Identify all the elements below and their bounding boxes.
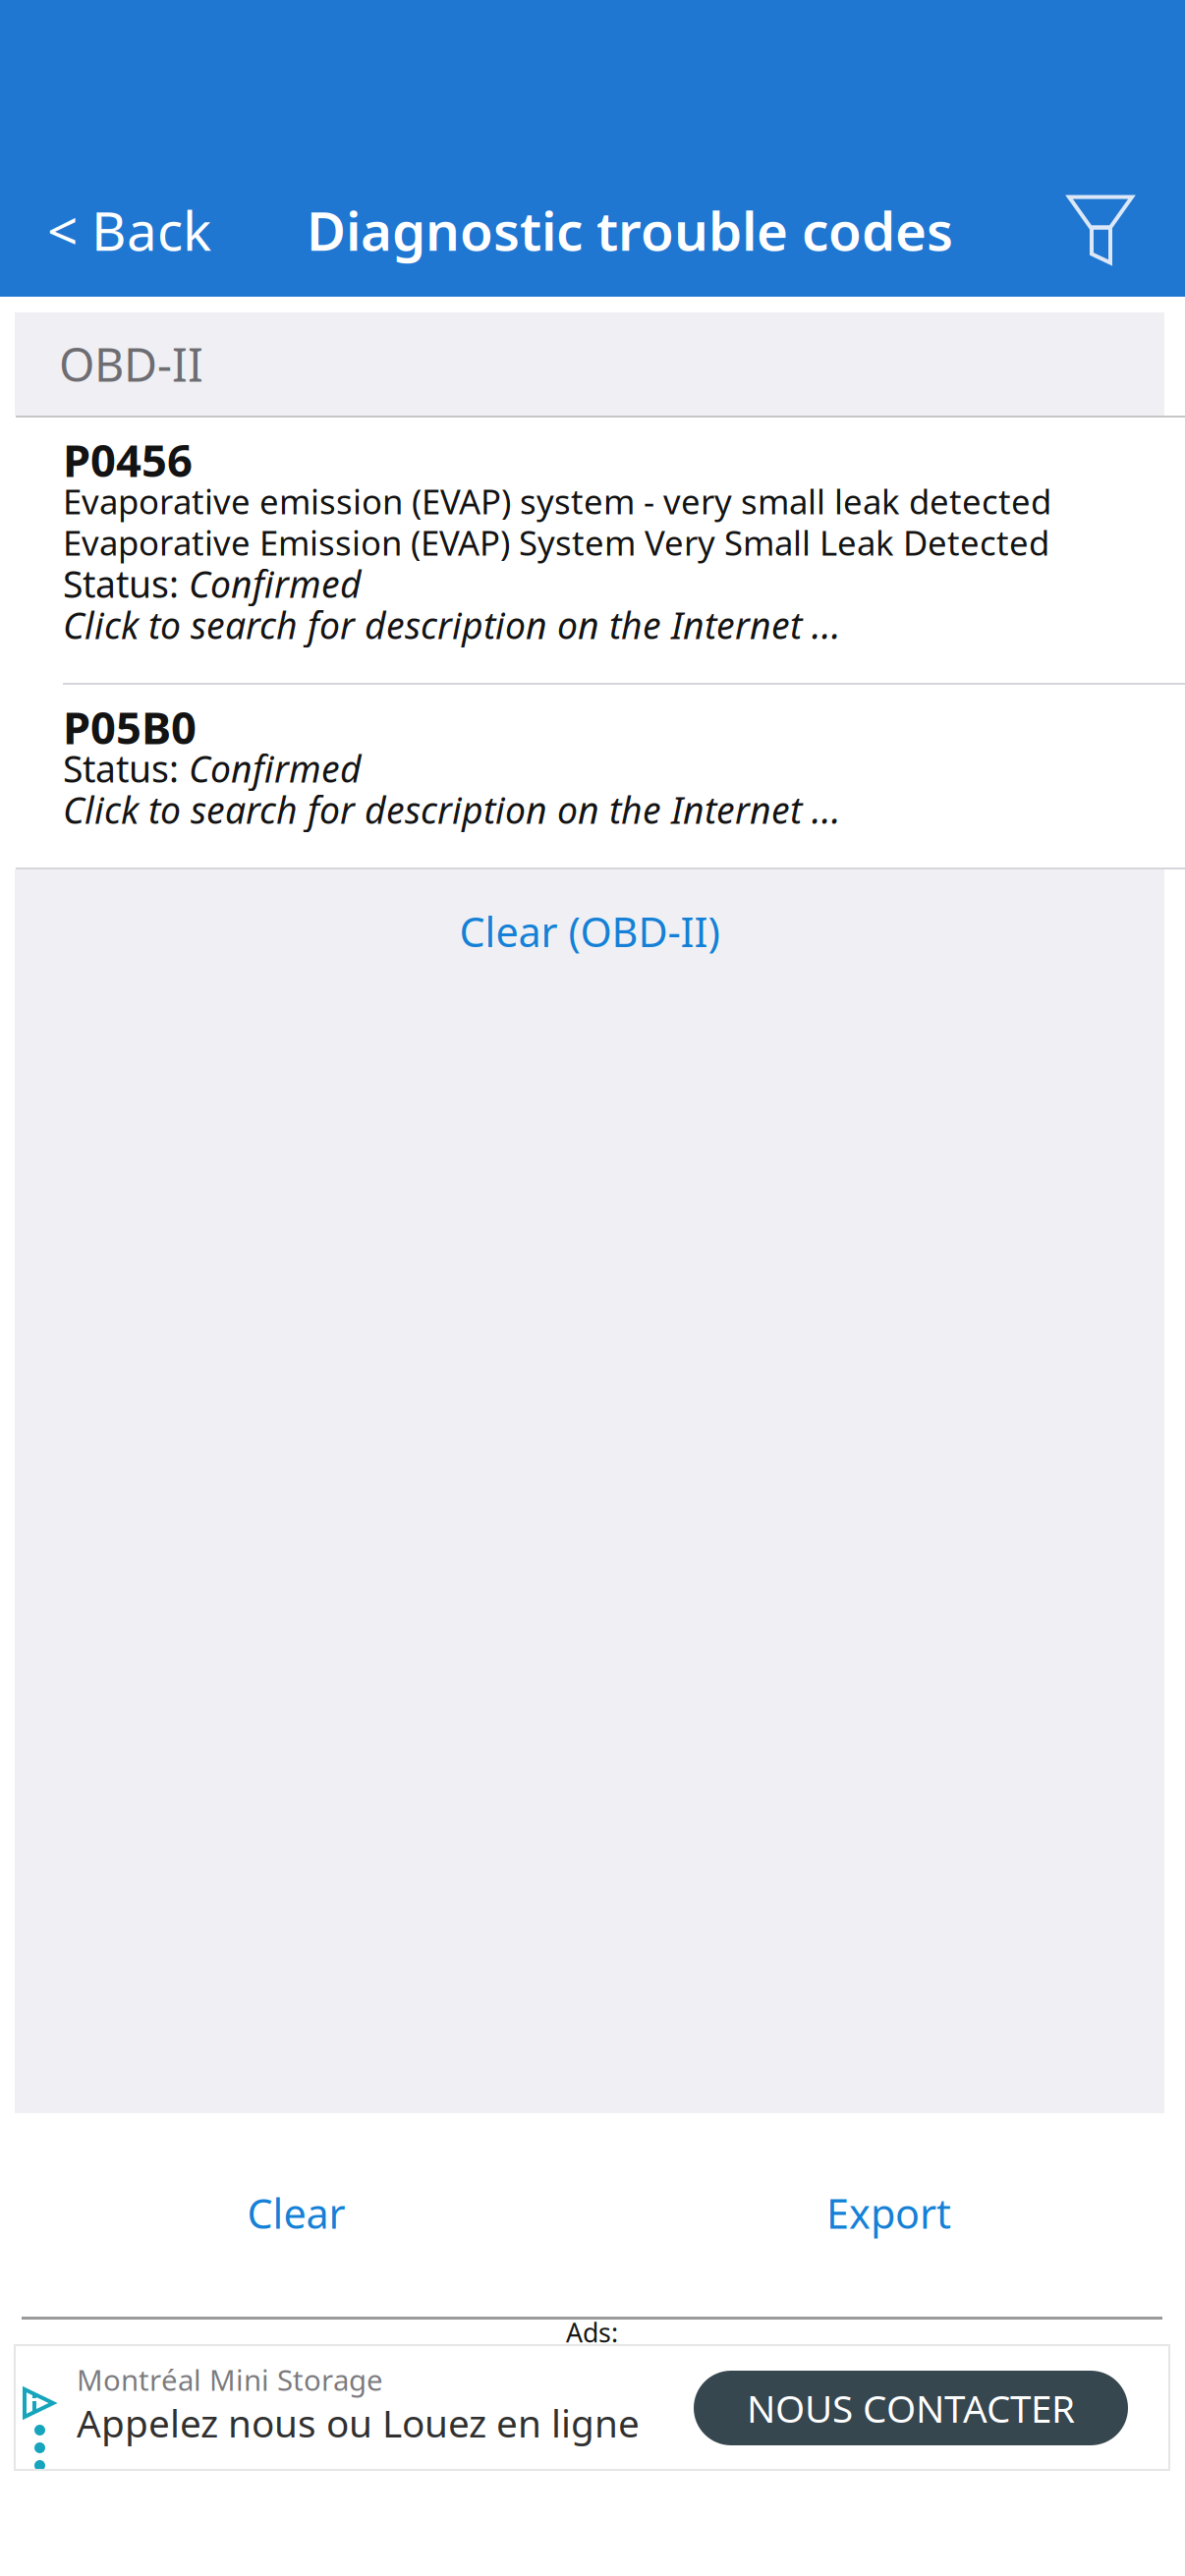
- staticText: Appelez nous ou Louez en ligne: [77, 2397, 640, 2448]
- staticText: Status: Confirmed: [63, 744, 362, 793]
- button[interactable]: Filter: [1042, 175, 1159, 285]
- staticText: Export: [826, 2186, 951, 2240]
- staticText: Click to search for description on the I…: [63, 600, 841, 649]
- staticText: Diagnostic trouble codes: [307, 194, 953, 266]
- staticText: Evaporative emission (EVAP) system - ver…: [63, 478, 1051, 524]
- staticText: Clear (OBD-II): [459, 904, 720, 958]
- button[interactable]: NOUS CONTACTER: [694, 2371, 1128, 2445]
- staticText: Click to search for description on the I…: [63, 785, 841, 834]
- button[interactable]: Export: [592, 2113, 1185, 2317]
- staticText: Montréal Mini Storage: [77, 2360, 383, 2399]
- staticText: Clear: [247, 2186, 345, 2240]
- button[interactable]: P0456: [0, 418, 1185, 683]
- staticText: Evaporative Emission (EVAP) System Very …: [63, 520, 1049, 565]
- staticText: P05B0: [63, 697, 197, 757]
- staticText: Status: Confirmed: [63, 559, 362, 608]
- button[interactable]: Montréal Mini Storage: [55, 2345, 640, 2446]
- staticText: < Back: [47, 194, 211, 266]
- button[interactable]: Clear: [0, 2113, 592, 2317]
- button[interactable]: < Back: [0, 175, 263, 285]
- button[interactable]: Clear (OBD-II): [15, 869, 1164, 993]
- staticText: OBD-II: [59, 334, 203, 394]
- staticText: P0456: [63, 430, 193, 489]
- button[interactable]: P05B0: [0, 685, 1185, 868]
- button[interactable]: Ad choices: [15, 2345, 55, 2470]
- staticText: Ads:: [566, 2315, 618, 2350]
- staticText: NOUS CONTACTER: [747, 2383, 1075, 2433]
